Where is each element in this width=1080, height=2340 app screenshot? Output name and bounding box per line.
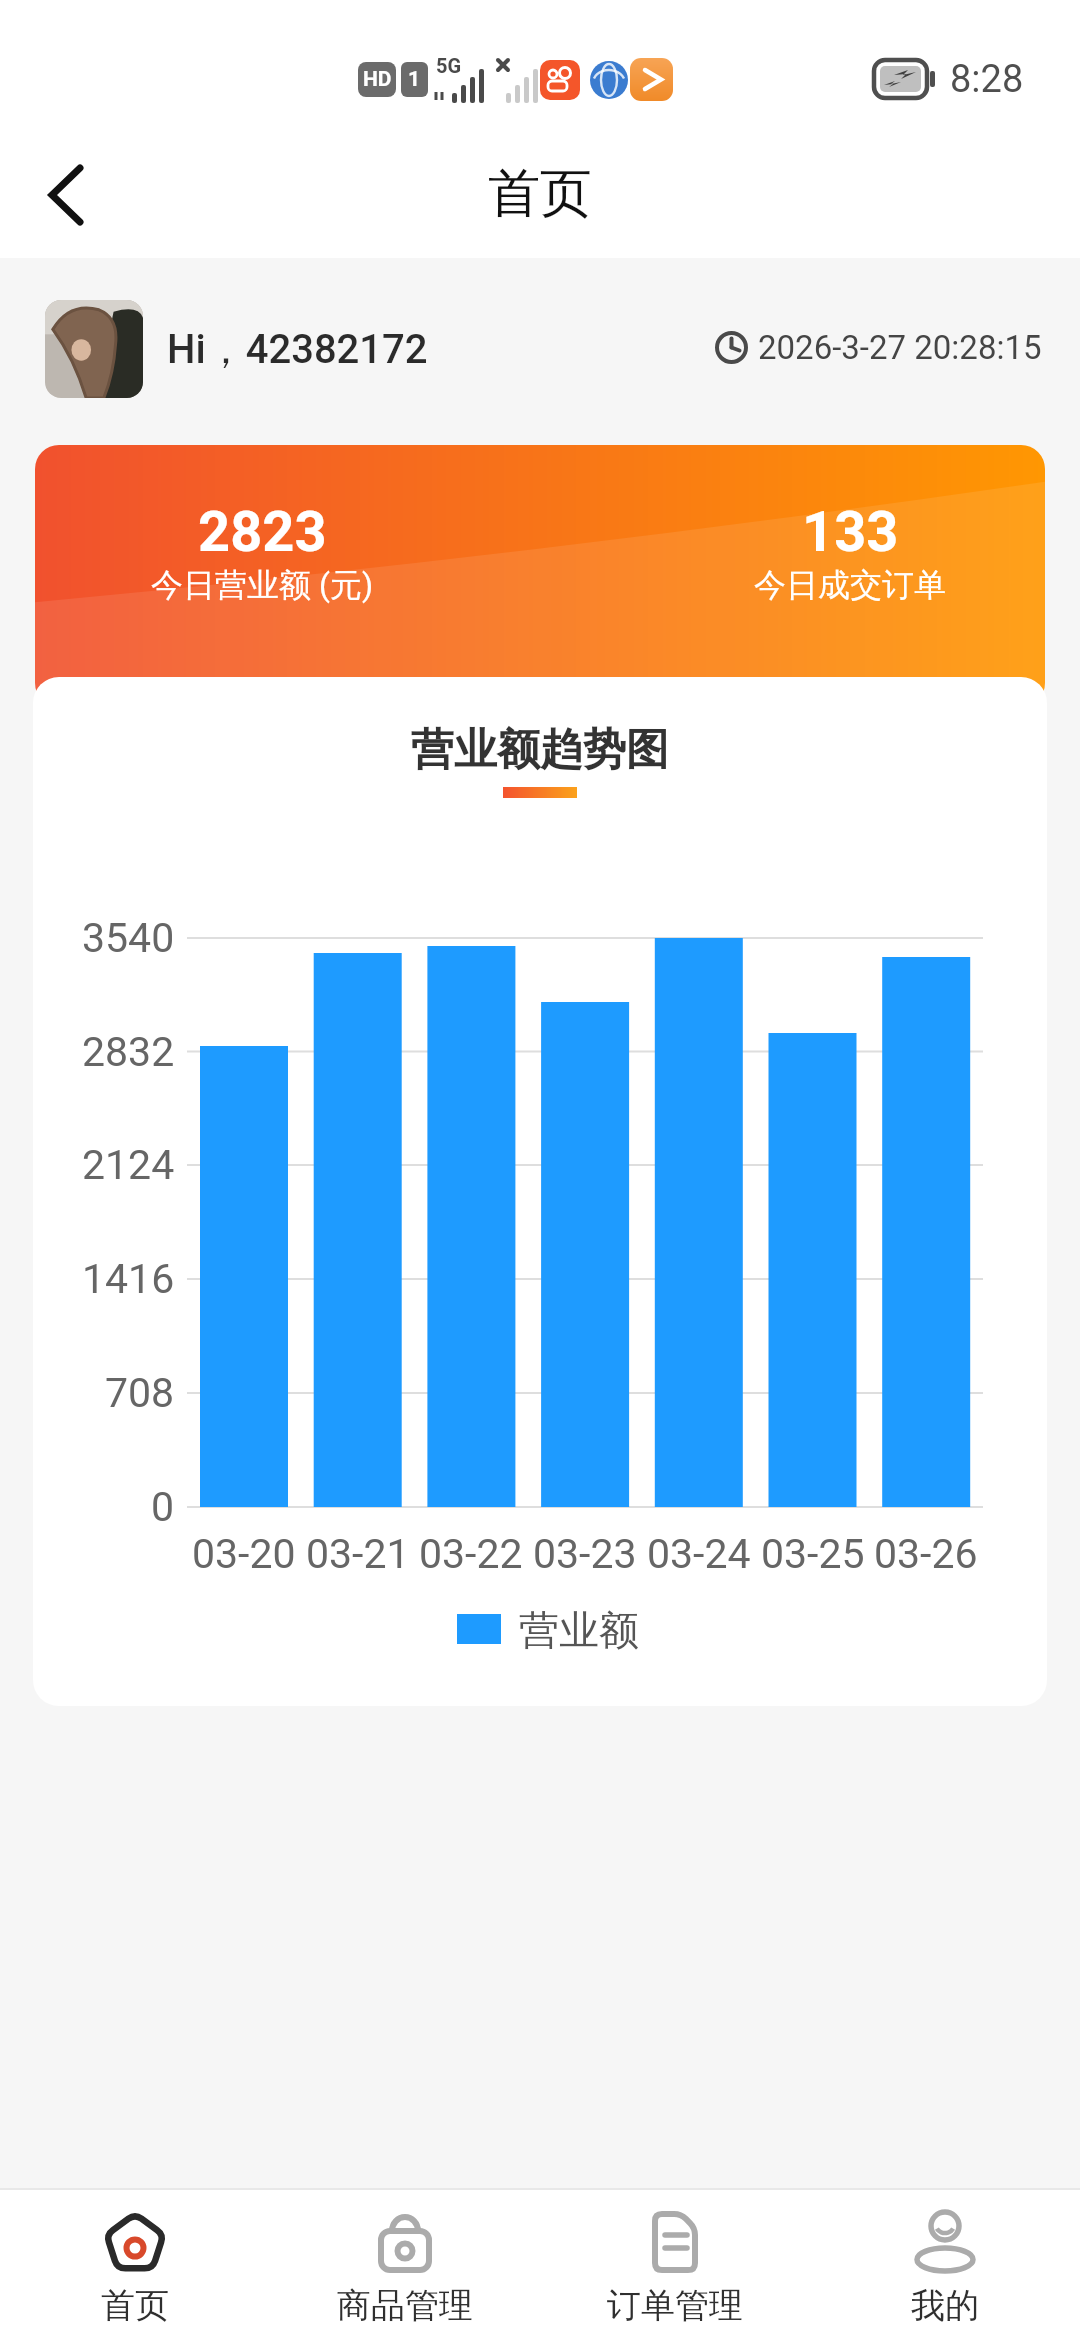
staticText: Hi，42382172 bbox=[167, 324, 428, 374]
staticText: 8:28 bbox=[950, 57, 1024, 102]
button[interactable]: 商品管理 bbox=[270, 2190, 540, 2340]
staticText: 商品管理 bbox=[337, 2284, 473, 2327]
staticText: 03-24 bbox=[647, 1530, 751, 1578]
staticText: HD bbox=[363, 67, 392, 92]
staticText: 营业额趋势图 bbox=[411, 723, 669, 777]
button[interactable]: 订单管理 bbox=[540, 2190, 810, 2340]
staticText: 首页 bbox=[101, 2284, 169, 2327]
staticText: 5G bbox=[436, 54, 462, 77]
staticText: 3540 bbox=[82, 914, 175, 962]
button[interactable]: 我的 bbox=[810, 2190, 1080, 2340]
staticText: 1416 bbox=[82, 1255, 175, 1303]
staticText: 03-21 bbox=[306, 1530, 410, 1578]
staticText: 03-26 bbox=[874, 1530, 978, 1578]
staticText: 2124 bbox=[82, 1141, 175, 1189]
staticText: 2823 bbox=[198, 499, 327, 565]
staticText: 2026-3-27 20:28:15 bbox=[758, 328, 1042, 367]
staticText: 03-23 bbox=[533, 1530, 637, 1578]
staticText: 今日营业额 (元) bbox=[151, 565, 374, 605]
button[interactable]: 首页 bbox=[0, 2190, 270, 2340]
staticText: 133 bbox=[802, 499, 899, 565]
button[interactable]: 2823 bbox=[35, 445, 1045, 707]
button[interactable] bbox=[30, 160, 100, 230]
staticText: 2832 bbox=[82, 1028, 175, 1076]
staticText: 03-22 bbox=[419, 1530, 523, 1578]
staticText: 我的 bbox=[911, 2284, 979, 2327]
staticText: 1 bbox=[408, 67, 421, 92]
staticText: 今日成交订单 bbox=[754, 565, 946, 605]
staticText: 03-20 bbox=[192, 1530, 296, 1578]
staticText: 首页 bbox=[488, 161, 592, 227]
staticText: 03-25 bbox=[761, 1530, 865, 1578]
staticText: 营业额 bbox=[519, 1605, 639, 1655]
staticText: 708 bbox=[105, 1369, 175, 1417]
staticText: 订单管理 bbox=[607, 2284, 743, 2327]
staticText: 0 bbox=[151, 1483, 175, 1531]
